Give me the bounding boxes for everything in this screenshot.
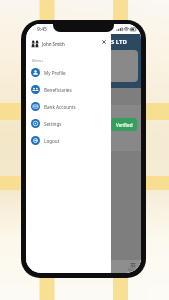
button[interactable]: John Smith [26, 36, 111, 52]
staticText: Menu [128, 268, 137, 272]
staticText: Verified [116, 122, 133, 128]
staticText: 9:45 [37, 26, 47, 33]
staticText: Settings [44, 121, 62, 127]
staticText: Beneficiaries [44, 87, 72, 93]
button[interactable]: Beneficiaries [26, 81, 111, 98]
staticText: Logout [44, 138, 60, 144]
button[interactable]: Close [100, 38, 108, 46]
button[interactable]: Bank Accounts [26, 98, 111, 115]
staticText: John Smith [42, 41, 65, 47]
staticText: Menu [32, 58, 43, 63]
button[interactable]: Logout [26, 132, 111, 149]
staticText: My Profile [44, 70, 66, 76]
staticText: S LTD [111, 38, 127, 46]
button[interactable]: Settings [26, 115, 111, 132]
staticText: Bank Accounts [44, 104, 76, 110]
button[interactable]: Verified [111, 118, 137, 131]
button[interactable]: My Profile [26, 64, 111, 81]
